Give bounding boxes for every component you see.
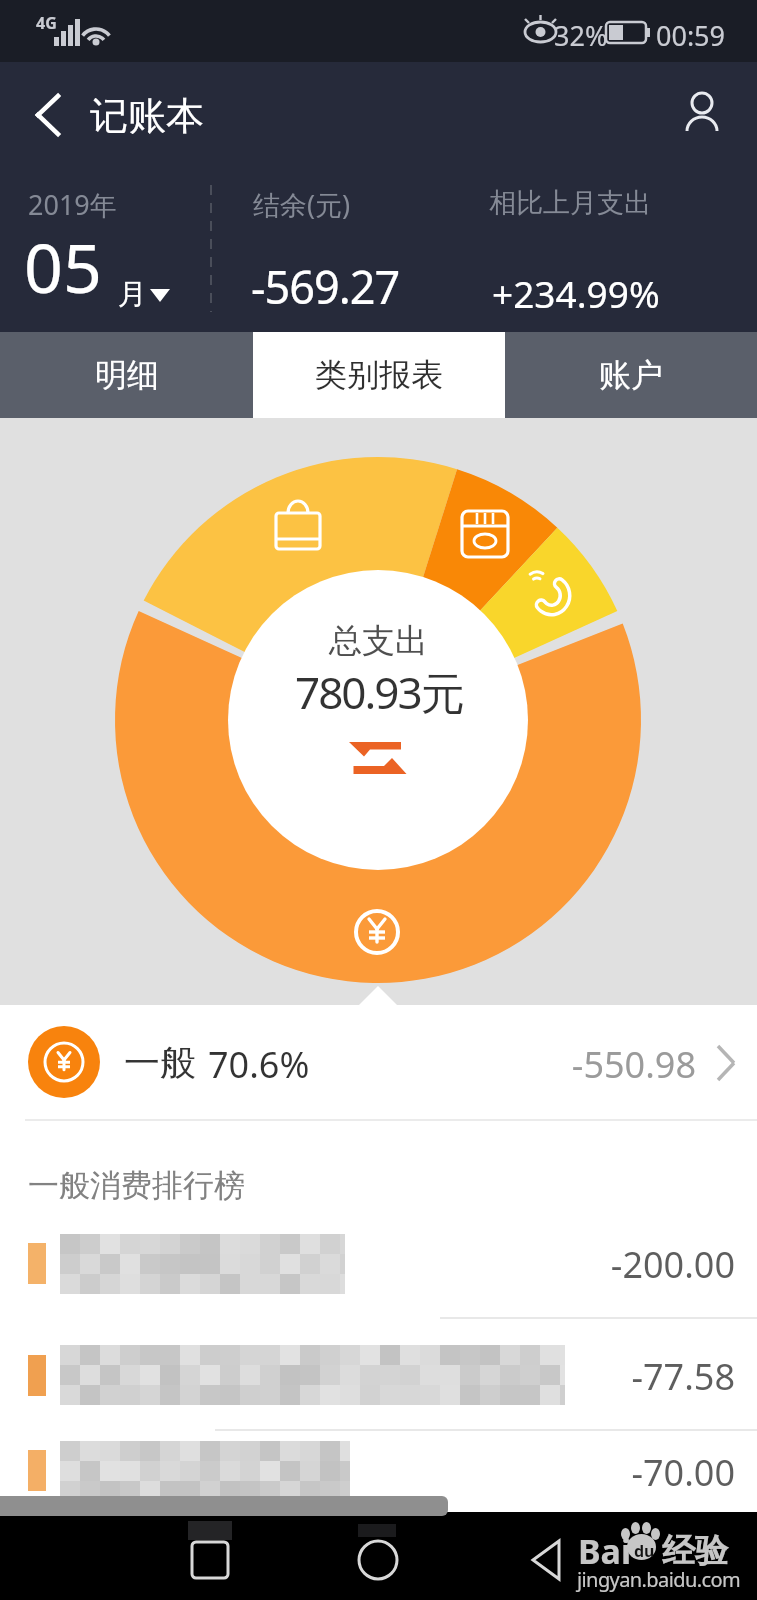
staticText: 经验 xyxy=(662,1530,728,1572)
staticText: 780.93元 xyxy=(295,662,463,722)
staticText: 32% xyxy=(554,17,608,54)
button[interactable] xyxy=(348,1534,408,1588)
staticText: jingyan.baidu.com xyxy=(577,1566,741,1593)
staticText: -70.00 xyxy=(631,1448,735,1497)
button[interactable] xyxy=(676,86,732,142)
button[interactable] xyxy=(520,1534,580,1588)
staticText: 05 xyxy=(24,220,102,313)
staticText: 结余(元) xyxy=(253,186,351,223)
staticText: 总支出 xyxy=(329,620,428,662)
staticText: Bai xyxy=(578,1528,632,1574)
staticText: 月 xyxy=(118,276,147,313)
staticText: 4G xyxy=(36,12,57,34)
button[interactable] xyxy=(0,1318,757,1430)
button[interactable] xyxy=(0,1005,757,1121)
staticText: -200.00 xyxy=(610,1240,735,1289)
button[interactable]: 账户 xyxy=(505,332,757,418)
button[interactable] xyxy=(20,220,180,320)
staticText: +234.99% xyxy=(492,268,660,318)
staticText: -77.58 xyxy=(631,1352,735,1401)
button[interactable]: 明细 xyxy=(0,332,253,418)
staticText: 相比上月支出 xyxy=(489,186,651,220)
button[interactable] xyxy=(0,1212,757,1318)
button[interactable] xyxy=(24,88,76,140)
staticText: du xyxy=(634,1540,655,1562)
button[interactable] xyxy=(0,1430,757,1510)
staticText: 明细 xyxy=(95,355,159,395)
staticText: -550.98 xyxy=(571,1040,696,1089)
button[interactable]: 类别报表 xyxy=(253,332,505,418)
staticText: 70.6% xyxy=(208,1040,310,1089)
staticText: 类别报表 xyxy=(315,355,443,395)
staticText: 账户 xyxy=(599,355,663,395)
staticText: 2019年 xyxy=(28,186,117,223)
staticText: -569.27 xyxy=(251,256,400,317)
button[interactable] xyxy=(180,1534,240,1588)
staticText: 一般消费排行榜 xyxy=(28,1166,245,1205)
staticText: 记账本 xyxy=(90,92,204,140)
staticText: 一般 xyxy=(124,1040,196,1085)
staticText: 00:59 xyxy=(656,17,726,54)
